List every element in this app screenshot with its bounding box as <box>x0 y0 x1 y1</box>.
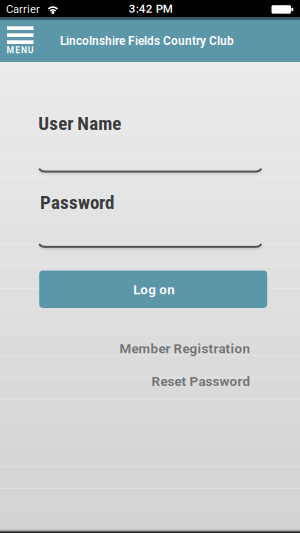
button[interactable]: Member Registration <box>119 341 250 356</box>
staticText: MENU <box>6 45 34 55</box>
button[interactable]: Menu <box>7 26 34 54</box>
staticText: Log on <box>133 282 174 298</box>
staticText: User Name <box>38 112 121 135</box>
staticText: Password <box>40 191 114 214</box>
staticText: 3:42 PM <box>129 2 173 16</box>
staticText: Lincolnshire Fields Country Club <box>60 34 234 48</box>
button[interactable]: Reset Password <box>151 374 250 389</box>
staticText: Member Registration <box>119 341 250 356</box>
staticText: Carrier <box>6 3 40 16</box>
button[interactable]: Log on <box>39 270 267 308</box>
staticText: Reset Password <box>151 374 250 389</box>
